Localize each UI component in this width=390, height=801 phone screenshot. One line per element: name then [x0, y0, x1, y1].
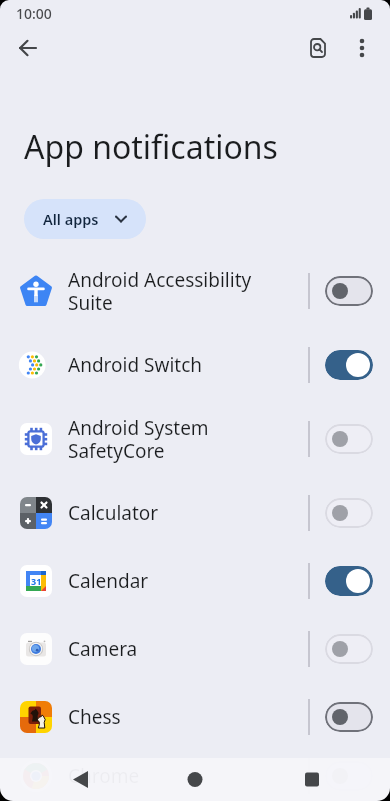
button[interactable]	[8, 28, 48, 68]
staticText: Camera	[68, 636, 308, 662]
button[interactable]: Chess	[0, 683, 390, 751]
staticText: Chrome	[68, 763, 308, 789]
button[interactable]	[342, 28, 382, 68]
button[interactable]: Calculator	[0, 479, 390, 547]
button[interactable]: Android Accessibility Suite	[0, 251, 390, 331]
staticText: 10:00	[16, 4, 52, 23]
button[interactable]	[325, 424, 373, 454]
staticText: All apps	[43, 209, 99, 229]
button[interactable]: Android System SafetyCore	[0, 399, 390, 479]
staticText: Chess	[68, 704, 308, 730]
button[interactable]	[325, 702, 373, 732]
button[interactable]: 31	[0, 547, 390, 615]
staticText: Android Switch	[68, 352, 308, 378]
button[interactable]	[325, 350, 373, 380]
button[interactable]	[130, 758, 260, 801]
staticText: 31	[31, 575, 42, 587]
button[interactable]: Android Switch	[0, 331, 390, 399]
button[interactable]	[325, 566, 373, 596]
button[interactable]	[298, 28, 338, 68]
button[interactable]	[260, 758, 390, 801]
button[interactable]: All apps	[24, 199, 146, 239]
button[interactable]: Camera	[0, 615, 390, 683]
staticText: Android System SafetyCore	[68, 415, 308, 464]
button[interactable]	[0, 758, 130, 801]
staticText: Calendar	[68, 568, 308, 594]
button[interactable]	[325, 634, 373, 664]
button[interactable]: Chrome	[0, 751, 390, 801]
staticText: App notifications	[24, 125, 278, 169]
staticText: Android Accessibility Suite	[68, 267, 308, 316]
button[interactable]	[325, 276, 373, 306]
button[interactable]	[325, 498, 373, 528]
staticText: Calculator	[68, 500, 308, 526]
